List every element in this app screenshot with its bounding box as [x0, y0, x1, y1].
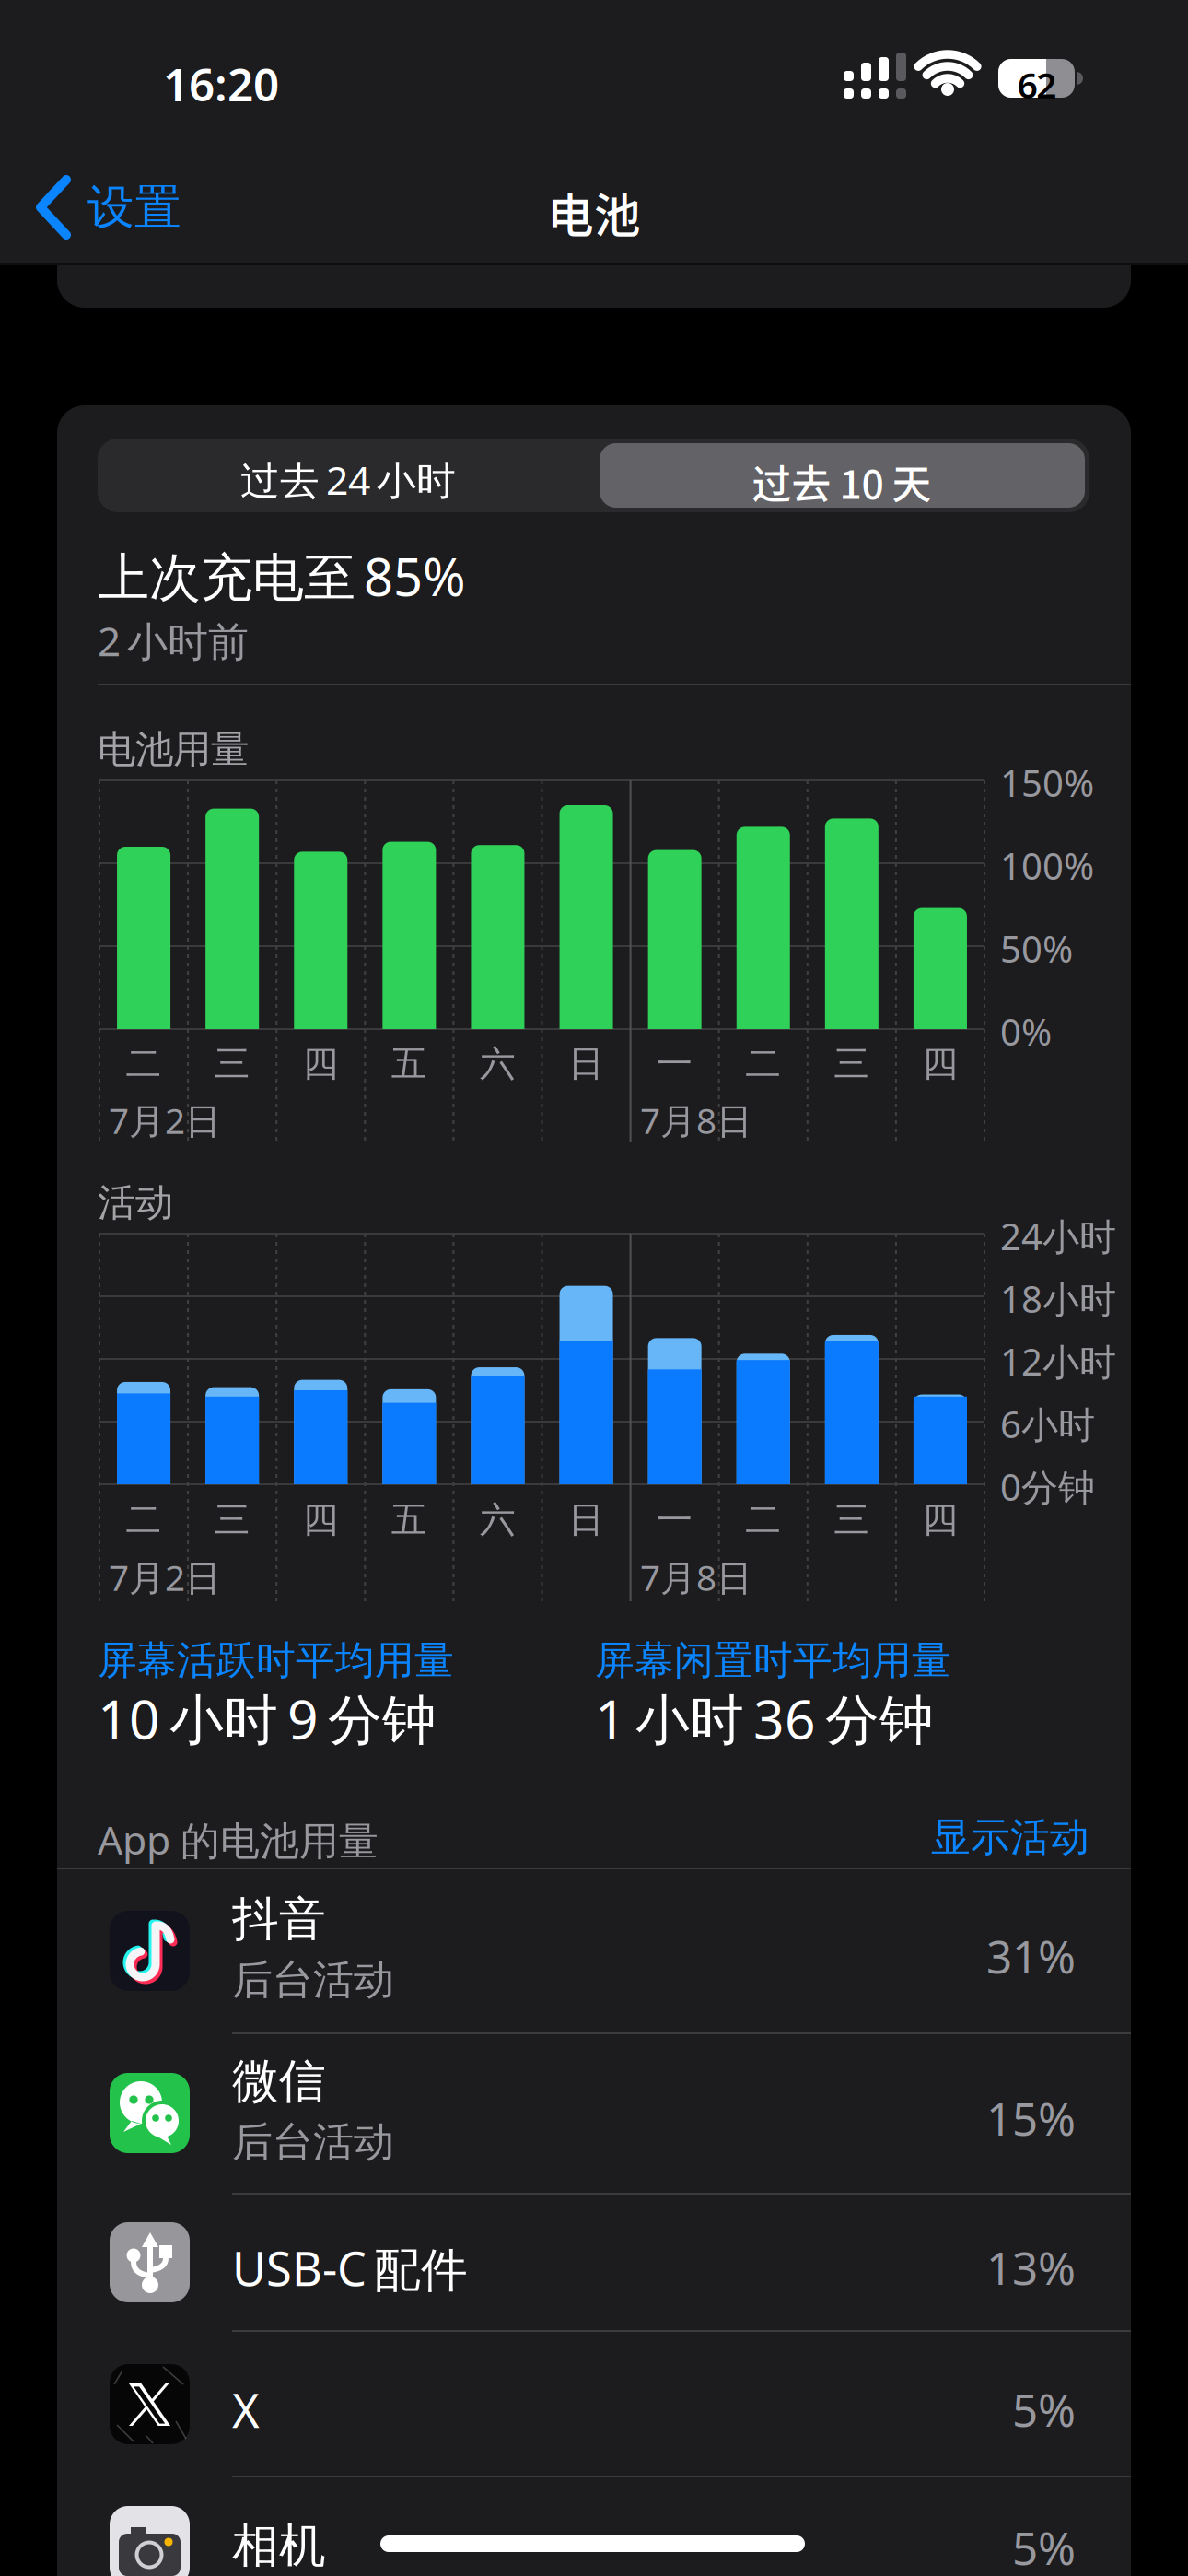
staticText: 四	[922, 1498, 958, 1542]
staticText: 微信	[232, 2053, 326, 2110]
staticText: 抖音	[232, 1891, 326, 1948]
staticText: 活动	[98, 1179, 173, 1226]
staticText: 五	[391, 1498, 427, 1542]
staticText: 六	[480, 1042, 516, 1086]
staticText: 过去 10 天	[752, 453, 932, 510]
staticText: 18小时	[1000, 1274, 1116, 1323]
staticText: 电池	[547, 179, 641, 246]
staticText: 6小时	[1000, 1399, 1095, 1448]
staticText: 二	[126, 1042, 162, 1086]
staticText: 二	[745, 1042, 781, 1086]
staticText: 5%	[1012, 2517, 1076, 2576]
staticText: 0%	[1000, 1007, 1052, 1056]
staticText: 2 小时前	[98, 614, 249, 667]
staticText: 5%	[1012, 2379, 1076, 2439]
staticText: 15%	[986, 2088, 1076, 2148]
staticText: 后台活动	[232, 1955, 394, 2005]
staticText: 10 小时 9 分钟	[98, 1682, 437, 1754]
staticText: 屏幕活跃时平均用量	[98, 1636, 454, 1685]
staticText: 24小时	[1000, 1212, 1116, 1260]
staticText: 7月2日	[109, 1096, 221, 1144]
staticText: 日	[568, 1042, 604, 1086]
staticText: 31%	[986, 1926, 1076, 1986]
staticText: 50%	[1000, 924, 1073, 973]
staticText: 过去 24 小时	[240, 453, 456, 506]
staticText: 四	[303, 1498, 339, 1542]
staticText: 三	[834, 1498, 870, 1542]
staticText: 上次充电至 85%	[98, 542, 466, 610]
staticText: 四	[922, 1042, 958, 1086]
staticText: 屏幕闲置时平均用量	[595, 1636, 951, 1685]
staticText: 1 小时 36 分钟	[595, 1682, 934, 1754]
staticText: 三	[214, 1498, 250, 1542]
staticText: 三	[214, 1042, 250, 1086]
staticText: 六	[480, 1498, 516, 1542]
staticText: 五	[391, 1042, 427, 1086]
staticText: 相机	[232, 2517, 326, 2574]
staticText: 7月8日	[640, 1553, 752, 1601]
staticText: 后台活动	[232, 2117, 394, 2167]
staticText: 7月2日	[109, 1553, 221, 1601]
staticText: 三	[834, 1042, 870, 1086]
staticText: USB-C 配件	[232, 2237, 468, 2299]
staticText: 13%	[986, 2237, 1076, 2297]
staticText: App 的电池用量	[98, 1813, 379, 1866]
staticText: 12小时	[1000, 1337, 1116, 1386]
staticText: 日	[568, 1498, 604, 1542]
staticText: 一	[657, 1498, 693, 1542]
staticText: 100%	[1000, 841, 1094, 890]
staticText: 电池用量	[98, 726, 249, 773]
staticText: 一	[657, 1042, 693, 1086]
staticText: 150%	[1000, 758, 1094, 807]
staticText: 四	[303, 1042, 339, 1086]
staticText: 0分钟	[1000, 1462, 1095, 1511]
staticText: 16:20	[163, 53, 279, 114]
staticText: 设置	[87, 179, 181, 236]
staticText: 62	[1017, 61, 1057, 108]
staticText: 二	[745, 1498, 781, 1542]
staticText: 显示活动	[931, 1813, 1089, 1861]
staticText: X	[232, 2379, 260, 2441]
staticText: 二	[126, 1498, 162, 1542]
staticText: 7月8日	[640, 1096, 752, 1144]
